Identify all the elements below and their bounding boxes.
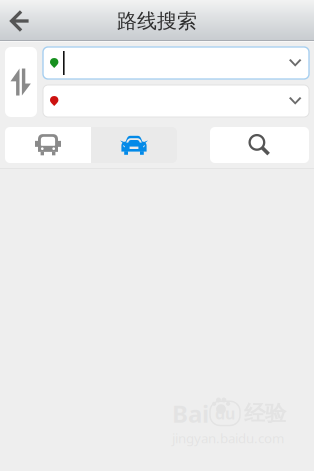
button[interactable]: Swap start and destination [5, 47, 37, 117]
button[interactable]: Search [210, 127, 309, 163]
button[interactable]: Back [0, 0, 37, 42]
staticText: du [215, 403, 235, 424]
button[interactable]: Driving [91, 127, 177, 163]
button[interactable] [43, 85, 309, 117]
staticText: 路线搜索 [117, 9, 197, 33]
button[interactable] [43, 47, 309, 79]
staticText: Bai [172, 397, 209, 429]
staticText: jingyan.baidu.com [172, 429, 284, 447]
button[interactable]: Transit [5, 127, 91, 163]
staticText: 经验 [244, 400, 286, 426]
